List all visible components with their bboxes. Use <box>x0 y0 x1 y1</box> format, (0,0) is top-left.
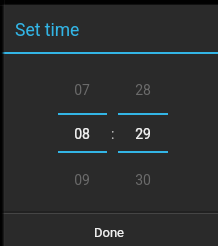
staticText: 29 <box>135 126 151 142</box>
staticText: 28 <box>135 82 151 98</box>
staticText: Set time <box>15 20 80 41</box>
staticText: Done <box>94 225 125 240</box>
button[interactable]: Next hour <box>57 166 106 194</box>
button[interactable]: Selected hour <box>57 120 106 148</box>
button[interactable]: Done <box>0 214 218 246</box>
staticText: : <box>111 126 115 142</box>
button[interactable]: Previous hour <box>57 76 106 104</box>
staticText: 08 <box>74 126 90 142</box>
staticText: 30 <box>135 172 151 188</box>
staticText: 09 <box>74 172 90 188</box>
button[interactable]: Selected minute <box>118 120 168 148</box>
staticText: 07 <box>74 82 90 98</box>
button[interactable]: Previous minute <box>118 76 168 104</box>
button[interactable]: Next minute <box>118 166 168 194</box>
